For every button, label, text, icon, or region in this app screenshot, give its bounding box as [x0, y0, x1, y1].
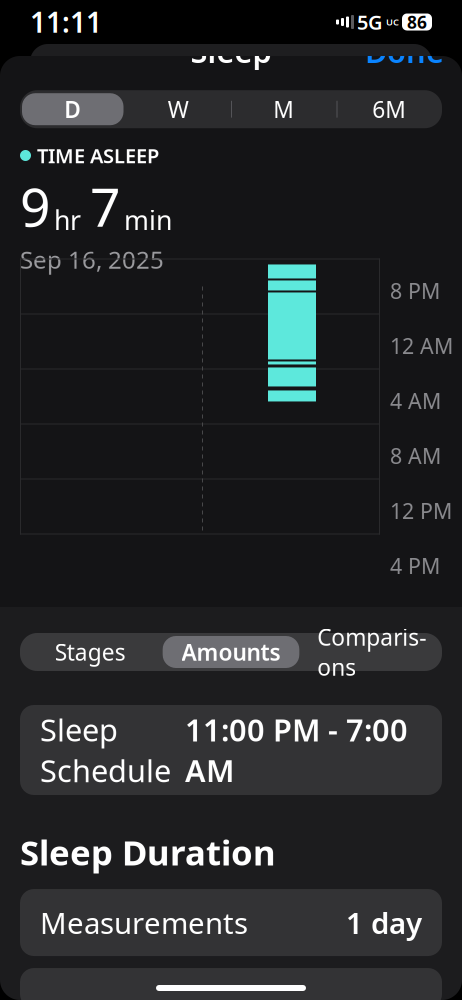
button[interactable]: Amounts: [161, 633, 301, 671]
staticText: 11:11: [30, 3, 102, 41]
staticText: TIME ASLEEP: [37, 142, 159, 169]
staticText: 86: [407, 10, 427, 33]
staticText: 8 AM: [390, 441, 441, 470]
button[interactable]: Done: [347, 23, 462, 79]
staticText: 12 PM: [390, 496, 452, 525]
staticText: Amounts: [181, 637, 280, 667]
staticText: Measurements: [40, 903, 248, 942]
staticText: 9: [20, 171, 51, 242]
staticText: UC: [386, 16, 399, 28]
staticText: Sep 16, 2025: [20, 244, 164, 275]
staticText: 12 AM: [390, 331, 453, 360]
button[interactable]: Stages: [20, 633, 161, 671]
button[interactable]: Comparisons: [301, 633, 442, 671]
staticText: Sleep Duration: [20, 829, 276, 875]
staticText: Time Asleep: [228, 614, 351, 643]
staticText: 11:00 PM - 7:00 AM: [185, 709, 408, 791]
button[interactable]: Sleep Schedule: [20, 705, 442, 795]
staticText: M: [273, 94, 294, 124]
staticText: Stages: [55, 637, 126, 667]
staticText: 4 PM: [390, 551, 440, 580]
button[interactable]: M: [231, 90, 336, 128]
staticText: Done: [365, 31, 444, 71]
staticText: D: [64, 94, 81, 124]
staticText: 1 day: [346, 903, 422, 942]
button[interactable]: 6M: [336, 90, 442, 128]
staticText: 4 AM: [390, 386, 441, 415]
staticText: 8 PM: [390, 276, 440, 305]
staticText: hr: [54, 202, 81, 238]
staticText: Comparisons: [317, 622, 426, 682]
staticText: Sleep: [190, 31, 271, 71]
button[interactable]: D: [20, 90, 125, 128]
staticText: 6M: [372, 94, 406, 124]
staticText: Sleep Schedule: [40, 709, 171, 791]
button[interactable]: W: [125, 90, 231, 128]
staticText: min: [124, 202, 172, 238]
button[interactable]: Measurements: [20, 889, 442, 956]
staticText: W: [168, 94, 189, 124]
staticText: 7: [90, 171, 121, 242]
staticText: 5G: [357, 9, 383, 35]
staticText: Time In Bed: [49, 614, 170, 643]
